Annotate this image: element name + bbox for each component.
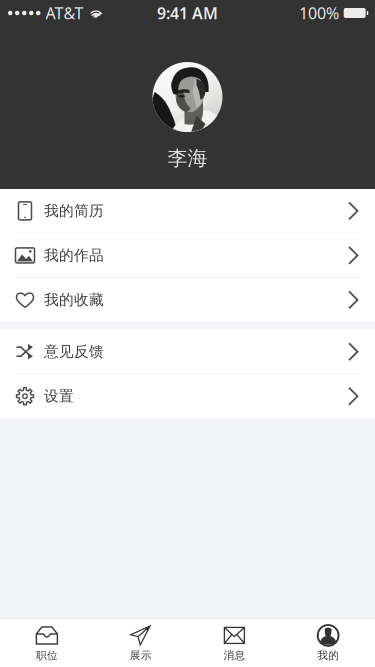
button[interactable]: 设置 <box>0 374 375 418</box>
button[interactable]: 意见反馈 <box>0 330 375 374</box>
button[interactable]: 消息 <box>187 619 281 667</box>
staticText: 职位 <box>36 649 58 662</box>
staticText: 设置 <box>44 387 74 405</box>
button[interactable]: 我的作品 <box>0 233 375 278</box>
staticText: 9:41 AM <box>157 2 218 24</box>
staticText: 我的简历 <box>44 202 104 220</box>
button[interactable]: 我的收藏 <box>0 278 375 322</box>
staticText: 我的收藏 <box>44 291 104 309</box>
staticText: 展示 <box>130 649 152 662</box>
staticText: 李海 <box>167 146 207 171</box>
staticText: 我的作品 <box>44 246 104 264</box>
button[interactable]: 我的 <box>281 619 375 667</box>
staticText: AT&T <box>45 2 83 24</box>
staticText: 100% <box>299 2 339 24</box>
staticText: 我的 <box>317 649 339 662</box>
button[interactable]: 我的简历 <box>0 189 375 233</box>
button[interactable]: 职位 <box>0 619 94 667</box>
button[interactable]: 展示 <box>94 619 188 667</box>
staticText: 意见反馈 <box>44 343 104 361</box>
staticText: 消息 <box>223 649 245 662</box>
